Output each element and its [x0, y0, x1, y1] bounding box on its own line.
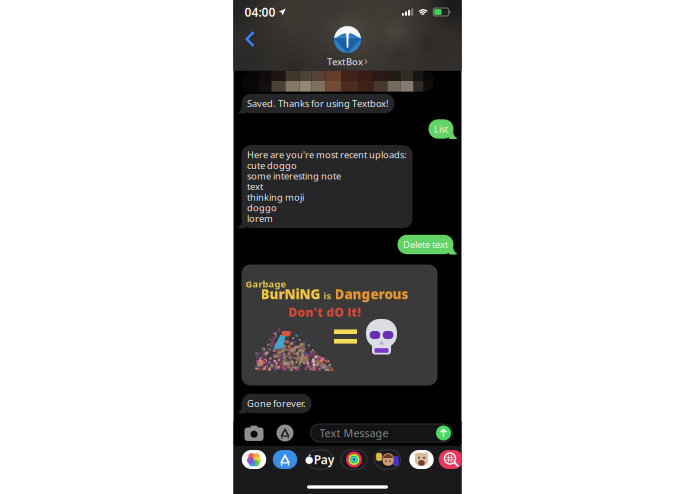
staticText: doggo — [247, 201, 277, 214]
button[interactable]: App Store — [273, 450, 297, 469]
button[interactable]: Images — [439, 450, 463, 469]
staticText: Garbage — [245, 278, 286, 290]
staticText: cute doggo — [247, 159, 297, 171]
staticText: Delete text — [403, 238, 448, 251]
staticText: Gone forever. — [247, 397, 306, 410]
staticText: thinking moji — [247, 191, 304, 203]
button[interactable]: Back — [237, 25, 262, 53]
staticText: Here are you're most recent uploads: — [247, 148, 407, 161]
button[interactable]: Memoji — [374, 450, 400, 469]
staticText: some interesting note — [247, 170, 341, 182]
staticText: Dangerous — [334, 285, 408, 303]
button[interactable]: Animoji — [409, 450, 434, 469]
button[interactable]: Photos — [242, 450, 266, 469]
staticText: text — [247, 180, 263, 193]
staticText: lorem — [247, 212, 273, 224]
staticText: Don't dO it! — [288, 304, 360, 320]
staticText: Text Message — [319, 426, 388, 440]
button[interactable]: TextBox — [321, 24, 374, 70]
staticText: Saved. Thanks for using Textbox! — [247, 97, 389, 110]
button[interactable]: Text Message — [310, 424, 452, 442]
button[interactable]: App Store — [276, 424, 293, 441]
staticText: List — [434, 123, 448, 135]
staticText: Pay — [314, 451, 335, 467]
staticText: 04:00 — [244, 4, 275, 20]
staticText: TextBox — [327, 56, 363, 68]
staticText: is — [323, 289, 331, 302]
button[interactable]: Apple Pay — [307, 450, 333, 469]
button[interactable]: Camera — [244, 425, 263, 441]
staticText: BurNiNG — [260, 285, 320, 303]
button[interactable]: Fitness — [341, 450, 367, 469]
